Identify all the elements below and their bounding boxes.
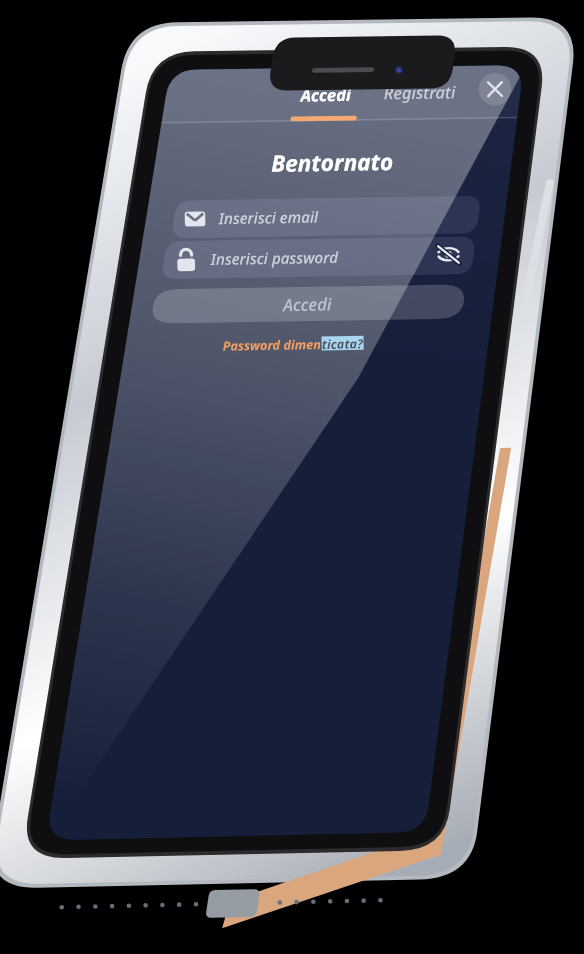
button[interactable]: Chiudi	[472, 69, 515, 108]
button[interactable]: Inserisci email	[170, 195, 480, 237]
button[interactable]: Mostra password	[421, 236, 475, 274]
button[interactable]: Password dimenticata?	[207, 331, 380, 356]
button[interactable]: Registrati tab	[375, 68, 473, 114]
button[interactable]: Accedi	[150, 284, 466, 323]
button[interactable]: Accedi tab	[268, 70, 381, 116]
button[interactable]: Inserisci password	[160, 237, 425, 278]
